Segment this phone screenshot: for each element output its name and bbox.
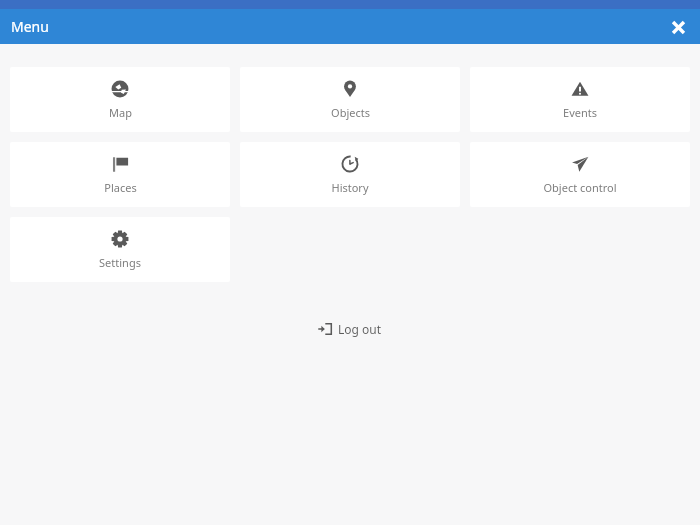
staticText: Places bbox=[104, 180, 137, 195]
staticText: Menu bbox=[11, 17, 49, 36]
button[interactable]: History bbox=[240, 142, 460, 207]
button[interactable]: Events bbox=[470, 67, 690, 132]
button[interactable]: Object control bbox=[470, 142, 690, 207]
button[interactable]: Log out bbox=[312, 317, 388, 341]
staticText: Settings bbox=[99, 255, 141, 270]
staticText: Map bbox=[109, 105, 132, 120]
staticText: Events bbox=[563, 105, 597, 120]
button[interactable]: Objects bbox=[240, 67, 460, 132]
button[interactable]: Settings bbox=[10, 217, 230, 282]
button[interactable]: Map bbox=[10, 67, 230, 132]
button[interactable]: Close menu bbox=[662, 11, 694, 43]
staticText: Objects bbox=[331, 105, 370, 120]
staticText: History bbox=[331, 180, 369, 195]
staticText: Log out bbox=[338, 321, 382, 337]
button[interactable]: Places bbox=[10, 142, 230, 207]
staticText: Object control bbox=[543, 180, 617, 195]
